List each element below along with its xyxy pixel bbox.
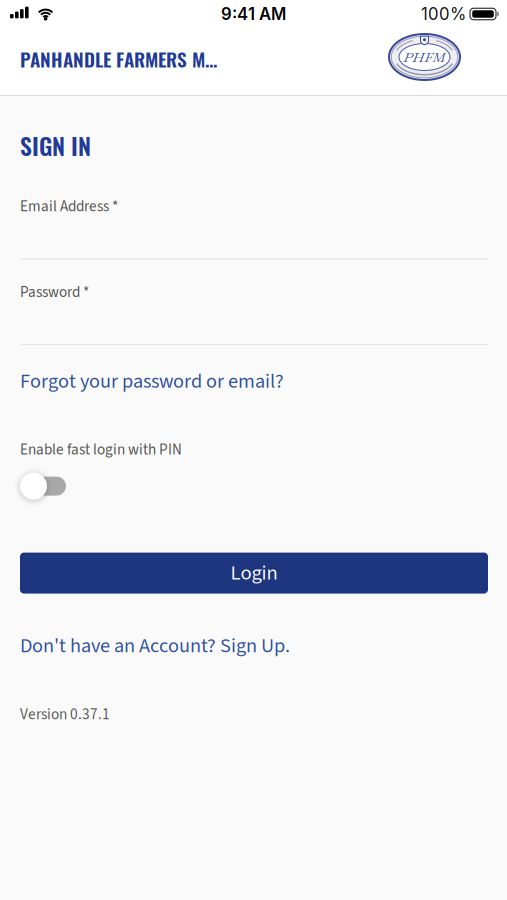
staticText: Forgot your password or email? bbox=[20, 367, 284, 396]
staticText: Don't have an Account? Sign Up. bbox=[20, 632, 290, 660]
button[interactable]: Don't have an Account? Sign Up. bbox=[20, 632, 290, 660]
staticText: 100% bbox=[421, 4, 466, 24]
staticText: PANHANDLE FARMERS M... bbox=[20, 45, 217, 73]
button[interactable]: Email Address bbox=[20, 196, 488, 259]
staticText: Enable fast login with PIN bbox=[20, 439, 182, 460]
staticText: Password * bbox=[20, 281, 89, 303]
staticText: 9:41 AM bbox=[221, 4, 286, 24]
staticText: SIGN IN bbox=[20, 128, 91, 163]
staticText: Version 0.37.1 bbox=[20, 703, 110, 725]
button[interactable]: Login bbox=[20, 553, 488, 594]
staticText: PHFM bbox=[403, 48, 445, 66]
staticText: Email Address * bbox=[20, 196, 118, 217]
button[interactable]: Password bbox=[20, 281, 488, 345]
button[interactable]: Forgot your password or email? bbox=[20, 367, 284, 396]
button[interactable]: Enable fast login with PIN bbox=[20, 473, 67, 500]
staticText: Login bbox=[230, 558, 277, 588]
